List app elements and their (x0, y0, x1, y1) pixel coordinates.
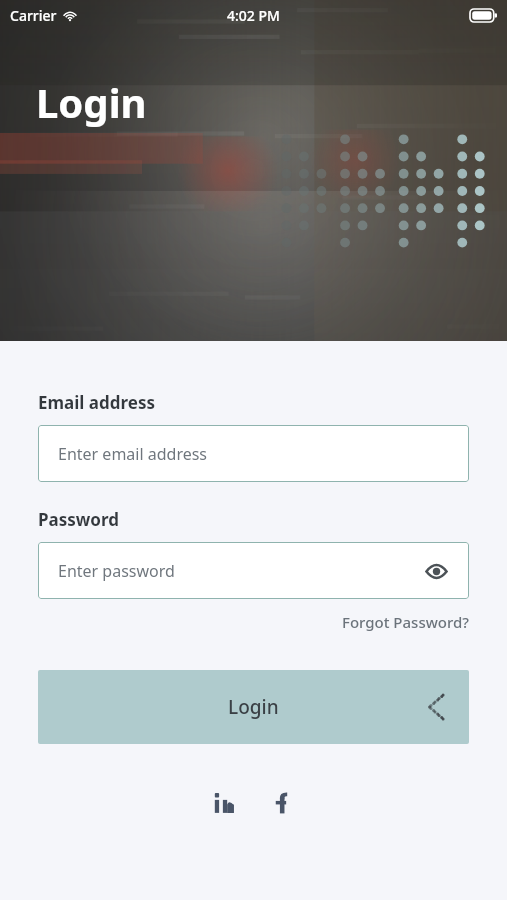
button[interactable]: Enter password (38, 542, 469, 599)
staticText: Email address (38, 391, 155, 414)
staticText: 4:02 PM (227, 6, 280, 25)
button[interactable]: Show password (423, 558, 449, 584)
staticText: Login (36, 75, 147, 129)
button[interactable]: Enter email address (38, 425, 469, 482)
staticText: Password (38, 508, 119, 531)
button[interactable]: LinkedIn (209, 786, 243, 820)
staticText: Login (228, 694, 279, 720)
button[interactable]: Login (38, 670, 469, 744)
staticText: Enter password (58, 560, 423, 582)
button[interactable]: Facebook (265, 786, 299, 820)
staticText: Carrier (10, 6, 57, 25)
staticText: Enter email address (58, 443, 449, 465)
button[interactable]: Forgot Password? (38, 612, 469, 632)
staticText: Forgot Password? (341, 612, 469, 632)
